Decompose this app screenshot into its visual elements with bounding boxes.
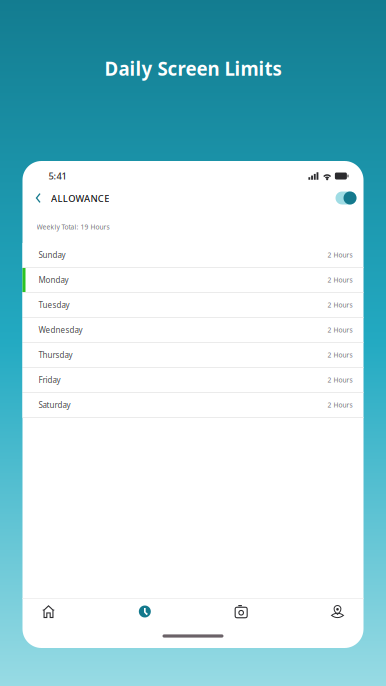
button[interactable]: Screen time [131,599,159,624]
button[interactable]: Camera [227,599,255,624]
button[interactable]: Saturday [22,393,363,418]
staticText: 2 Hours [327,351,352,359]
staticText: Weekly Total: 19 Hours [36,223,109,231]
staticText: Daily Screen Limits [104,56,281,81]
button[interactable]: Monday [22,268,363,293]
staticText: Sunday [38,250,65,260]
button[interactable]: Home [34,599,62,624]
staticText: Friday [38,375,60,385]
button[interactable]: Wednesday [22,318,363,343]
button[interactable]: Thursday [22,343,363,368]
button[interactable]: Places [323,599,351,624]
staticText: ALLOWANCE [51,192,109,205]
button[interactable]: Back [31,187,45,209]
staticText: Saturday [38,400,70,410]
button[interactable]: Toggle allowance [329,186,356,209]
button[interactable]: Friday [22,368,363,393]
staticText: 2 Hours [327,251,352,259]
staticText: 2 Hours [327,401,352,409]
staticText: 2 Hours [327,376,352,384]
staticText: Tuesday [38,300,69,310]
staticText: 2 Hours [327,301,352,309]
staticText: Wednesday [38,325,82,335]
staticText: 5:41 [48,170,66,182]
staticText: Monday [38,275,68,285]
button[interactable]: Sunday [22,243,363,268]
staticText: 2 Hours [327,326,352,334]
button[interactable]: Tuesday [22,293,363,318]
staticText: Thursday [38,350,72,360]
staticText: 2 Hours [327,276,352,284]
